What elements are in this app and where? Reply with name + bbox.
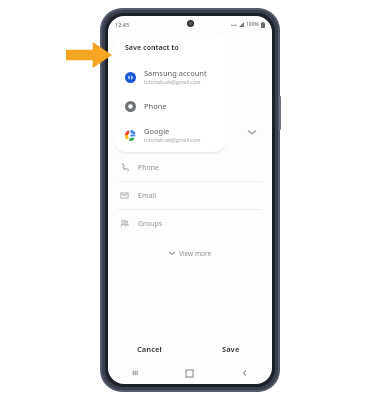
staticText: Save [222,344,240,354]
button[interactable]: Google [114,120,226,150]
staticText: 12:45 [115,21,130,28]
button[interactable]: Back [217,362,272,384]
staticText: 100% [246,21,259,28]
staticText: Save contact to [125,43,179,53]
button[interactable]: Home [162,362,217,384]
staticText: Email [138,191,156,201]
staticText: Samsung account [144,68,207,78]
button[interactable]: Groups [108,210,272,237]
button[interactable]: Cancel [108,336,190,362]
staticText: Phone [144,101,167,111]
button[interactable]: Recent apps [108,362,162,384]
button[interactable]: Email [108,182,272,209]
staticText: tutorials.att@gmail.com [144,137,201,144]
button[interactable]: Phone [108,154,272,181]
button[interactable]: View more [108,243,272,263]
staticText: Phone [138,163,160,173]
staticText: Cancel [137,344,162,354]
button[interactable]: Samsung account [114,62,226,92]
button[interactable]: Phone [114,92,226,120]
staticText: View more [179,249,212,258]
staticText: Google [144,126,170,136]
staticText: Groups [138,219,163,229]
staticText: tutorials.att@gmail.com [144,79,201,86]
button[interactable]: Save [190,336,272,362]
